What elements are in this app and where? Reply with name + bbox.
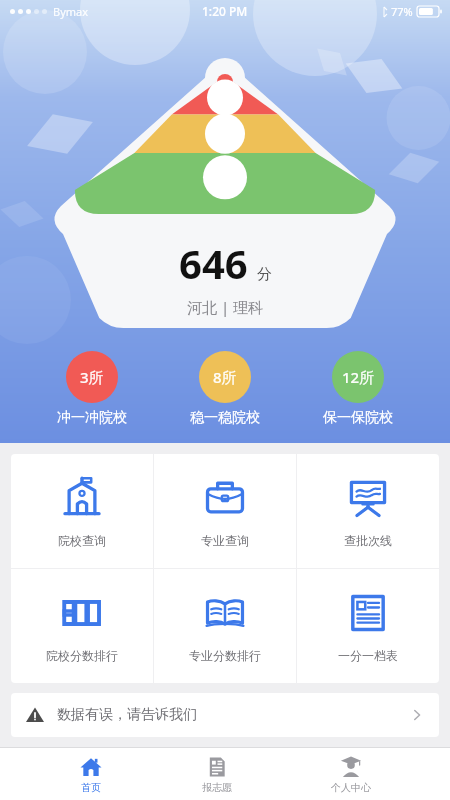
button[interactable]: 首页	[59, 751, 123, 798]
staticText: 保一保院校	[323, 409, 393, 427]
staticText: 稳一稳院校	[190, 409, 260, 427]
button[interactable]: 专业分数排行	[154, 569, 296, 683]
staticText: 分	[257, 265, 272, 284]
button[interactable]: 报志愿	[182, 751, 252, 798]
staticText: Bymax	[53, 4, 89, 19]
staticText: 河北 | 理科	[187, 297, 264, 317]
staticText: 8所	[213, 367, 237, 387]
button[interactable]: 查批次线	[297, 454, 439, 568]
button[interactable]: 专业查询	[154, 454, 296, 568]
staticText: 个人中心	[331, 781, 371, 794]
button[interactable]: 8所	[184, 349, 266, 429]
button[interactable]: 院校分数排行	[11, 569, 153, 683]
staticText: 1:20 PM	[202, 3, 248, 19]
staticText: 首页	[81, 781, 101, 794]
staticText: 专业分数排行	[189, 648, 261, 663]
button[interactable]: 个人中心	[311, 751, 391, 798]
button[interactable]: 一分一档表	[297, 569, 439, 683]
staticText: 3所	[80, 367, 104, 387]
button[interactable]: 3所	[51, 349, 133, 429]
staticText: 77%	[391, 4, 413, 19]
button[interactable]: 数据有误，请告诉我们	[11, 693, 439, 737]
staticText: 646	[179, 236, 248, 290]
button[interactable]: 院校查询	[11, 454, 153, 568]
staticText: 12所	[342, 367, 375, 387]
button[interactable]: 12所	[317, 349, 399, 429]
staticText: 院校分数排行	[46, 648, 118, 663]
staticText: 数据有误，请告诉我们	[57, 706, 197, 724]
staticText: 一分一档表	[338, 648, 398, 663]
staticText: 报志愿	[202, 781, 232, 794]
staticText: 专业查询	[201, 533, 249, 548]
staticText: 院校查询	[58, 533, 106, 548]
staticText: 查批次线	[344, 533, 392, 548]
staticText: 冲一冲院校	[57, 409, 127, 427]
